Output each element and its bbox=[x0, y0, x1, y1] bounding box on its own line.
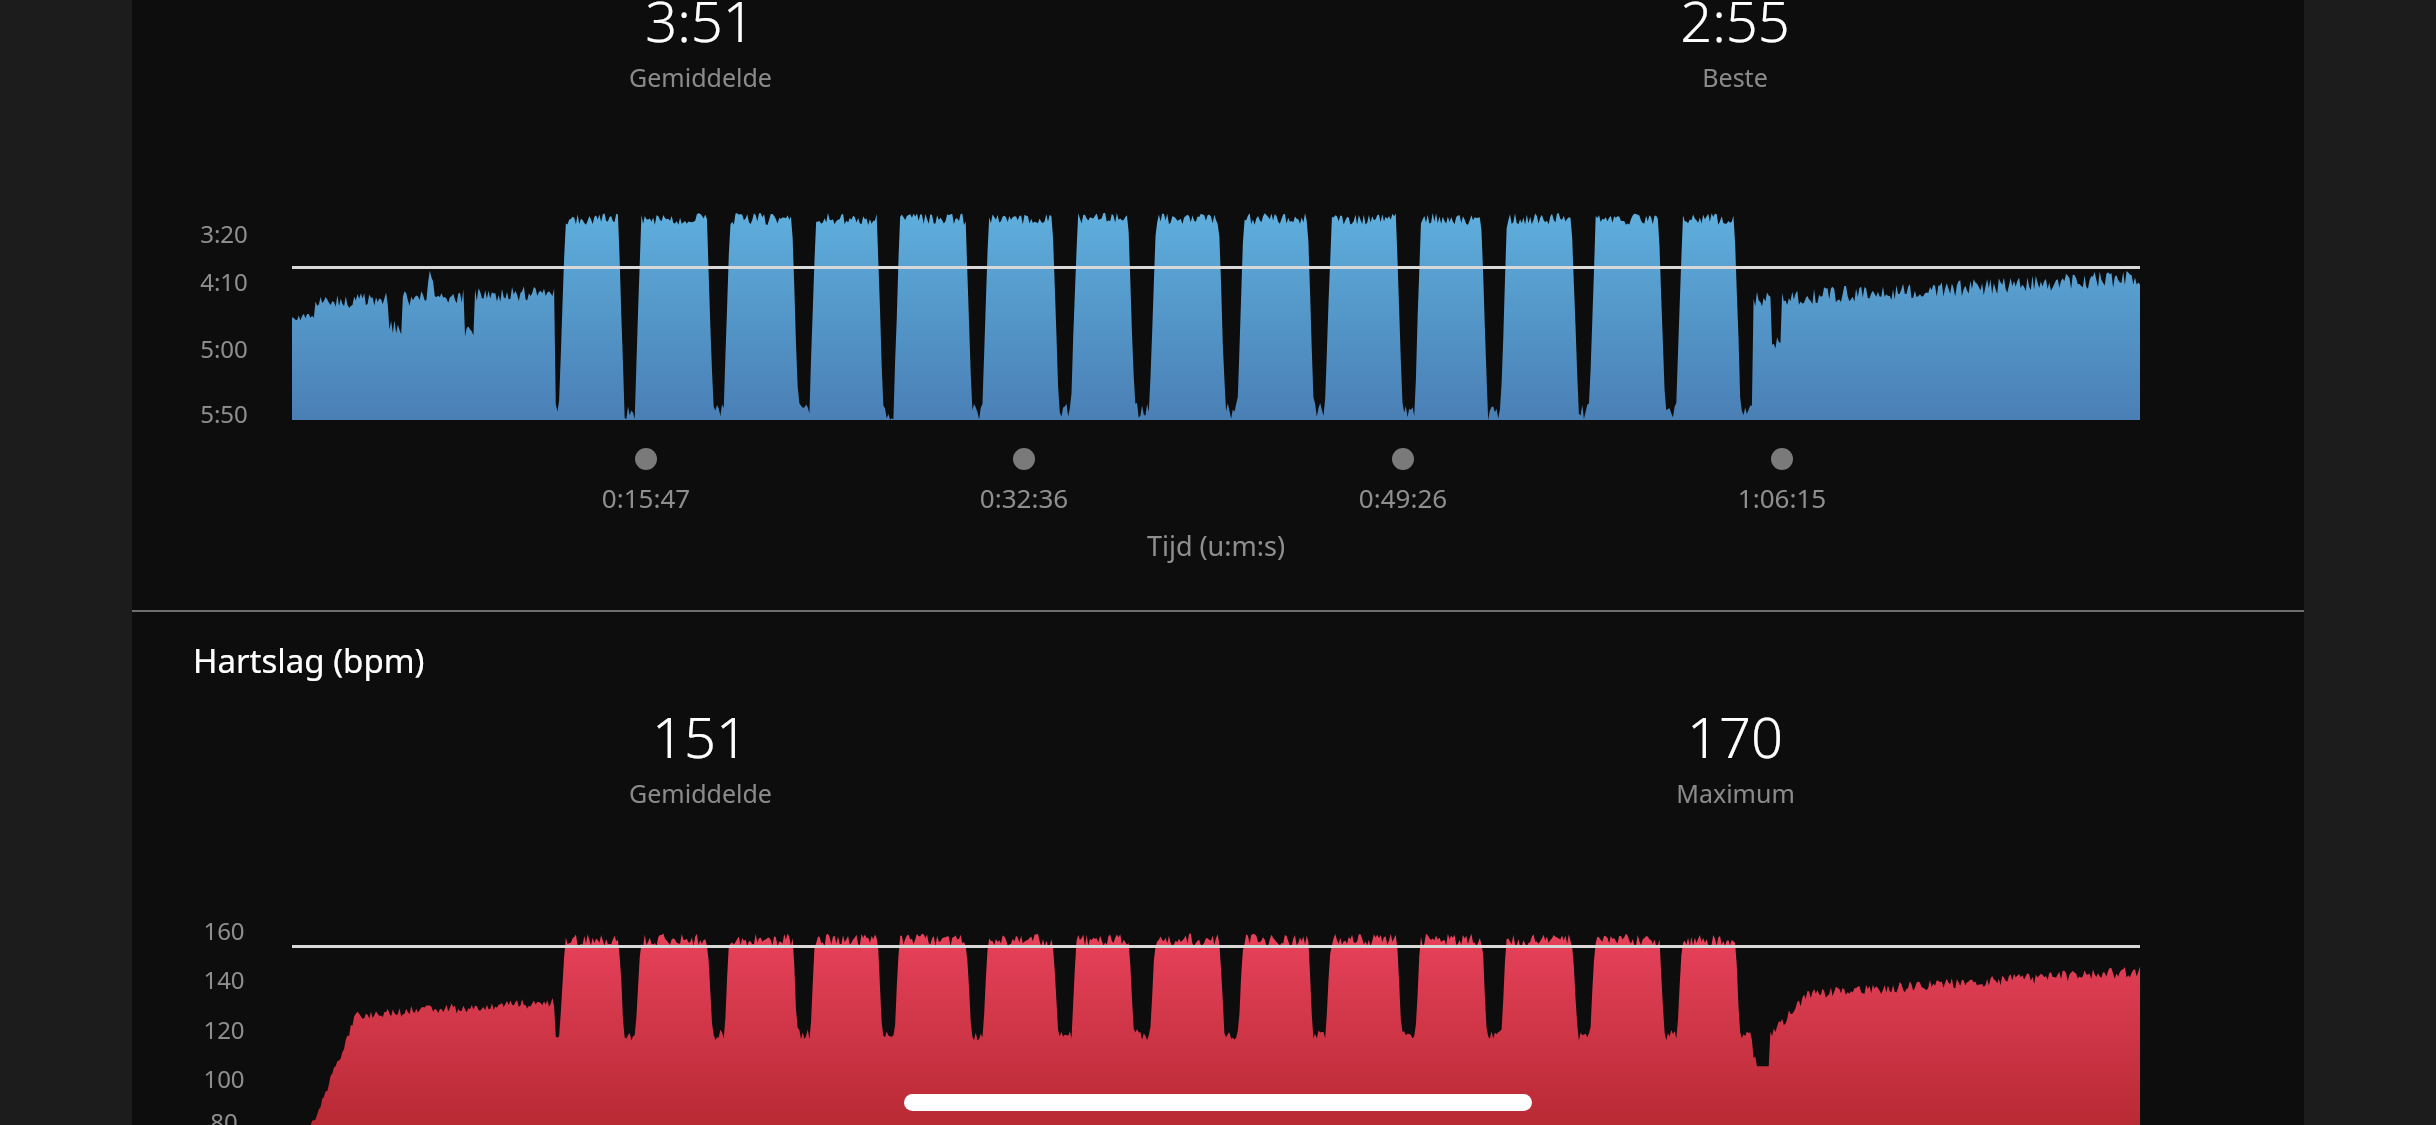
button[interactable]: 3:51 bbox=[520, 0, 880, 94]
staticText: 5:00 bbox=[178, 332, 270, 365]
staticText: 140 bbox=[178, 963, 270, 996]
staticText: 3:51 bbox=[645, 0, 755, 58]
staticText: 151 bbox=[652, 698, 748, 774]
staticText: Maximum bbox=[1676, 776, 1795, 810]
staticText: 160 bbox=[178, 914, 270, 947]
staticText: Beste bbox=[1702, 60, 1768, 94]
other: Home indicator bbox=[904, 1094, 1532, 1111]
staticText: 4:10 bbox=[178, 265, 270, 298]
staticText: Tijd (u:m:s) bbox=[1096, 527, 1336, 564]
button[interactable]: 170 bbox=[1555, 698, 1915, 810]
staticText: 100 bbox=[178, 1062, 270, 1095]
staticText: 5:50 bbox=[178, 397, 270, 430]
staticText: 3:20 bbox=[178, 217, 270, 250]
staticText: 2:55 bbox=[1680, 0, 1790, 58]
button[interactable]: 151 bbox=[520, 698, 880, 810]
staticText: Gemiddelde bbox=[629, 60, 772, 94]
staticText: 0:49:26 bbox=[1283, 480, 1523, 515]
staticText: 0:32:36 bbox=[904, 480, 1144, 515]
button[interactable]: 2:55 bbox=[1555, 0, 1915, 94]
button[interactable]: Hartslag (bpm) bbox=[193, 638, 425, 683]
staticText: Gemiddelde bbox=[629, 776, 772, 810]
staticText: 170 bbox=[1687, 698, 1783, 774]
staticText: 0:15:47 bbox=[526, 480, 766, 515]
staticText: 1:06:15 bbox=[1662, 480, 1902, 515]
staticText: 80 bbox=[178, 1105, 270, 1125]
staticText: 120 bbox=[178, 1013, 270, 1046]
